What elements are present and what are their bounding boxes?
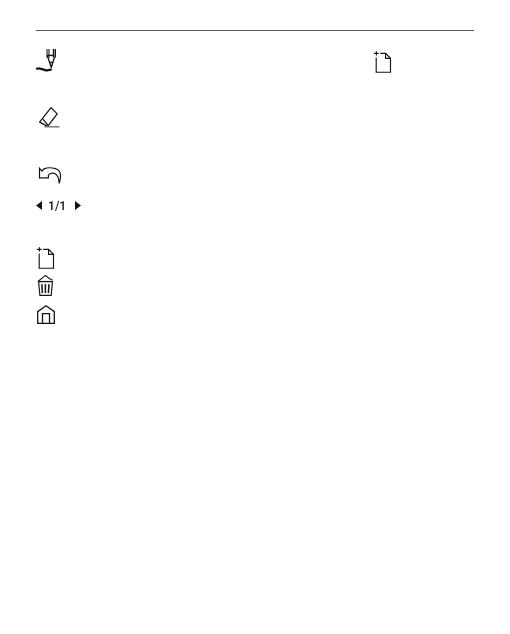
button[interactable]: Previous page bbox=[36, 199, 42, 211]
button[interactable]: Add page bbox=[31, 242, 60, 275]
button[interactable]: Delete bbox=[33, 270, 58, 301]
button[interactable]: Home bbox=[32, 300, 60, 329]
button[interactable]: Undo bbox=[34, 163, 66, 189]
button[interactable]: Pen bbox=[31, 43, 63, 77]
staticText: 1/1 bbox=[48, 199, 67, 211]
button[interactable]: Eraser bbox=[34, 102, 66, 133]
button[interactable]: Next page bbox=[75, 199, 81, 211]
button[interactable]: New page bbox=[368, 46, 397, 79]
